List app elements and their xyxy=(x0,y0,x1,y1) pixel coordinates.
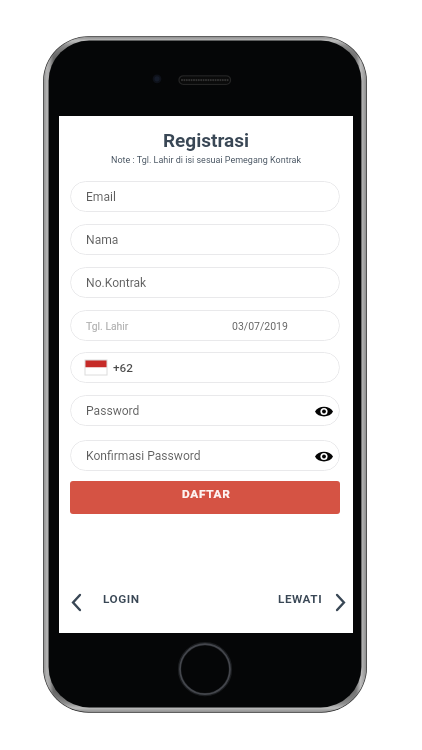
staticText: +62 xyxy=(113,361,133,375)
staticText: Nama xyxy=(86,233,119,247)
staticText: Email xyxy=(86,190,116,204)
button[interactable]: Password xyxy=(70,395,340,426)
other: Back to login xyxy=(72,595,81,610)
other: Skip xyxy=(336,595,345,610)
staticText: DAFTAR xyxy=(182,487,231,501)
staticText: 03/07/2019 xyxy=(232,320,288,332)
staticText: LOGIN xyxy=(103,592,140,606)
button[interactable]: LEWATI xyxy=(276,586,347,611)
other: Indonesia country code xyxy=(85,360,107,375)
button[interactable]: Tgl. Lahir xyxy=(70,310,340,341)
staticText: Tgl. Lahir xyxy=(86,320,129,332)
staticText: Note : Tgl. Lahir di isi sesuai Pemegang… xyxy=(59,155,353,166)
button[interactable]: No.Kontrak xyxy=(70,267,340,298)
staticText: Password xyxy=(86,404,140,418)
staticText: Konfirmasi Password xyxy=(86,449,201,463)
button[interactable]: Show password xyxy=(311,398,337,424)
staticText: LEWATI xyxy=(278,592,323,606)
button[interactable]: Email xyxy=(70,181,340,212)
staticText: No.Kontrak xyxy=(86,276,147,290)
staticText: Registrasi xyxy=(59,129,353,151)
button[interactable]: Back to login xyxy=(70,586,142,611)
button[interactable]: Show password xyxy=(311,443,337,469)
button[interactable]: Konfirmasi Password xyxy=(70,440,340,471)
button[interactable]: Nama xyxy=(70,224,340,255)
button[interactable]: Indonesia country code xyxy=(70,352,340,383)
button[interactable]: DAFTAR xyxy=(70,481,340,514)
